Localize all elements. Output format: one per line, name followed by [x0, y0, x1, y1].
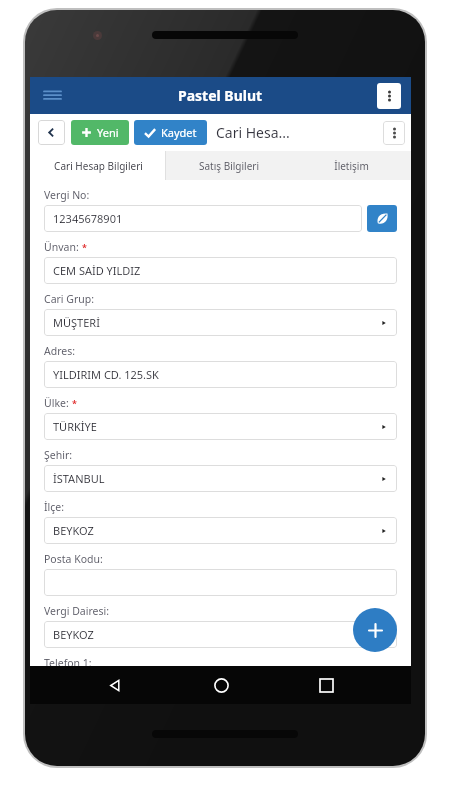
button[interactable]: TÜRKİYE — [44, 413, 397, 440]
staticText: İSTANBUL — [53, 471, 105, 486]
staticText: CEM SAİD YILDIZ — [53, 263, 141, 278]
staticText: Telefon 1: — [44, 656, 92, 666]
button[interactable]: MÜŞTERİ — [44, 309, 397, 336]
button[interactable]: Satış Bilgileri — [166, 151, 292, 180]
button[interactable]: Ekle — [353, 608, 397, 652]
button[interactable]: Menü — [44, 87, 61, 104]
staticText: Pastel Bulut — [178, 86, 263, 105]
staticText: Cari Hesa... — [216, 123, 383, 142]
button[interactable]: BEYKOZ — [44, 621, 397, 648]
staticText: BEYKOZ — [53, 523, 94, 538]
staticText: Vergi Dairesi: — [44, 604, 110, 618]
button[interactable]: Recents — [306, 666, 346, 704]
staticText: Satış Bilgileri — [199, 159, 259, 173]
staticText: * — [82, 241, 87, 253]
staticText: Şehir: — [44, 448, 73, 462]
staticText: Cari Hesap Bilgileri — [54, 159, 143, 173]
button[interactable]: CEM SAİD YILDIZ — [44, 257, 397, 284]
button[interactable]: Back — [95, 666, 135, 704]
button[interactable]: İletişim — [292, 151, 411, 180]
staticText: MÜŞTERİ — [53, 315, 100, 330]
staticText: İletişim — [334, 159, 369, 173]
staticText: TÜRKİYE — [53, 419, 97, 434]
staticText: BEYKOZ — [53, 627, 94, 642]
button[interactable]: Daha fazla — [377, 83, 401, 109]
button[interactable]: BEYKOZ — [44, 517, 397, 544]
staticText: Adres: — [44, 344, 76, 358]
staticText: Cari Grup: — [44, 292, 95, 306]
staticText: Ülke: — [44, 396, 69, 410]
staticText: * — [72, 397, 77, 409]
staticText: Posta Kodu: — [44, 552, 103, 566]
staticText: Kaydet — [161, 125, 197, 140]
button[interactable]: Kaydet — [134, 120, 207, 145]
button[interactable]: 12345678901 — [44, 205, 362, 232]
button[interactable]: İSTANBUL — [44, 465, 397, 492]
staticText: Ünvan: — [44, 240, 79, 254]
button[interactable]: Geri — [38, 120, 65, 145]
button[interactable]: Temizle — [367, 205, 397, 232]
staticText: İlçe: — [44, 500, 65, 514]
button[interactable]: YILDIRIM CD. 125.SK — [44, 361, 397, 388]
button[interactable] — [44, 569, 397, 596]
button[interactable]: Seçenekler — [383, 121, 405, 145]
button[interactable]: Yeni — [71, 120, 129, 145]
staticText: YILDIRIM CD. 125.SK — [53, 367, 159, 382]
button[interactable]: Cari Hesap Bilgileri — [30, 151, 166, 180]
staticText: Yeni — [97, 125, 119, 140]
button[interactable]: Home — [201, 666, 241, 704]
staticText: Vergi No: — [44, 188, 90, 202]
staticText: 12345678901 — [53, 211, 123, 226]
